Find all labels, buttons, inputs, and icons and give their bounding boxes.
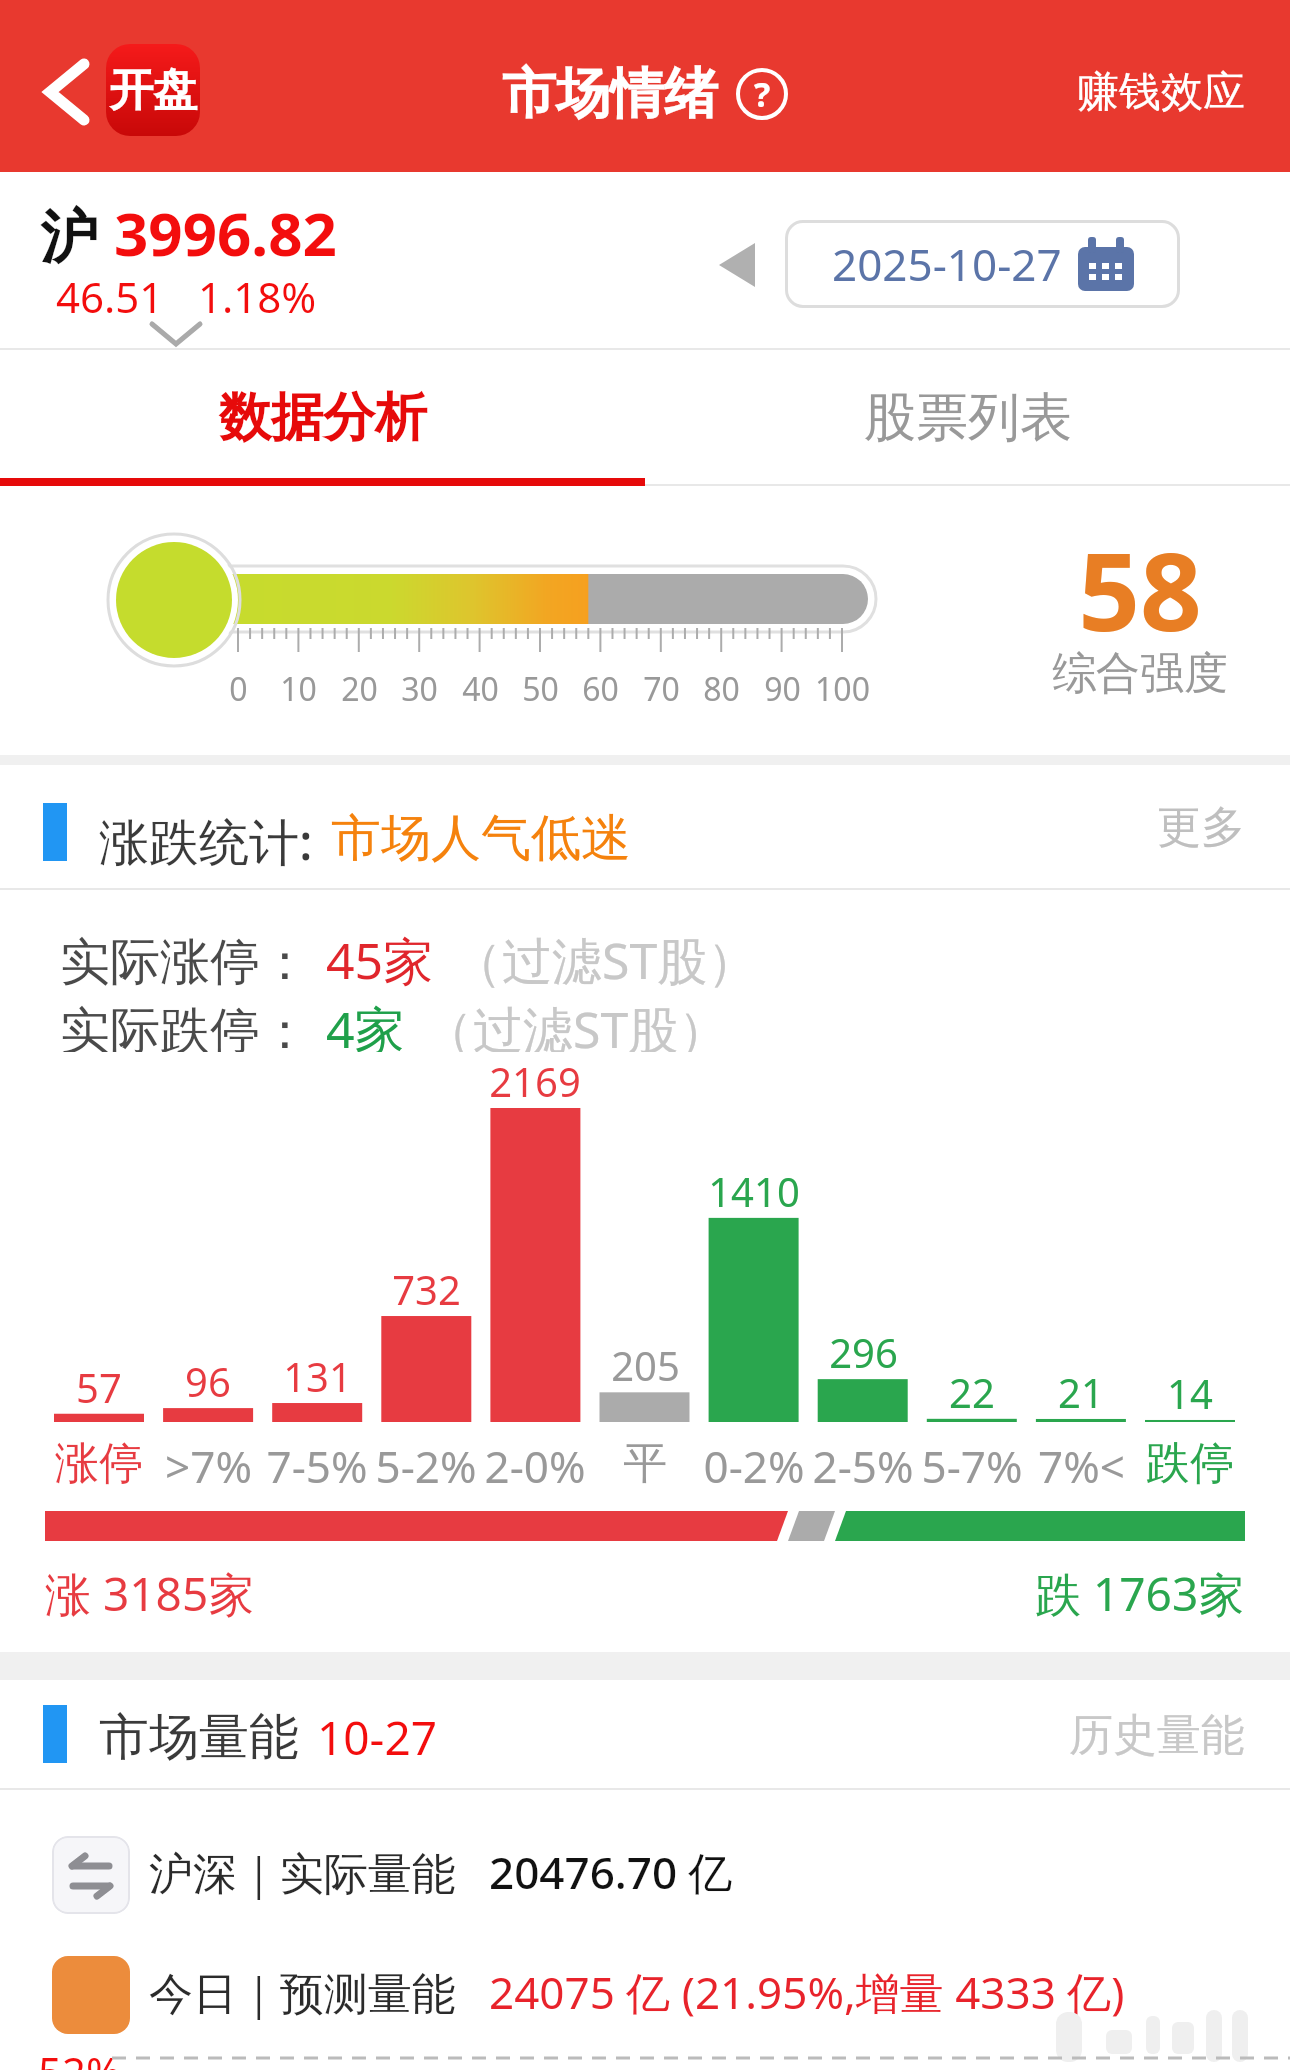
staticText: （过滤ST股） bbox=[452, 926, 758, 994]
staticText: 80 bbox=[703, 667, 740, 711]
button[interactable]: ? bbox=[736, 68, 788, 120]
staticText: 开盘 bbox=[109, 63, 197, 118]
staticText: 沪 bbox=[40, 201, 98, 274]
staticText: 沪深｜实际量能 bbox=[149, 1847, 457, 1902]
button[interactable]: 开盘 bbox=[106, 44, 200, 136]
staticText: 市场情绪 bbox=[502, 60, 718, 128]
staticText: 0 bbox=[229, 667, 248, 711]
staticText: 131 bbox=[283, 1349, 352, 1403]
staticText: 跌停 bbox=[1146, 1436, 1234, 1491]
staticText: 70 bbox=[643, 667, 680, 711]
staticText: 58 bbox=[1078, 516, 1202, 663]
staticText: 7-5% bbox=[266, 1436, 368, 1496]
staticText: 50 bbox=[522, 667, 559, 711]
staticText: 1410 bbox=[708, 1164, 800, 1218]
staticText: 2025-10-27 bbox=[832, 234, 1062, 294]
staticText: 60 bbox=[582, 667, 619, 711]
staticText: 10-27 bbox=[317, 1706, 438, 1769]
button[interactable]: 股票列表 bbox=[645, 350, 1290, 486]
staticText: 40 bbox=[462, 667, 499, 711]
staticText: 10 bbox=[280, 667, 317, 711]
staticText: 实际跌停： bbox=[60, 1000, 310, 1063]
staticText: 21 bbox=[1058, 1365, 1104, 1419]
staticText: 1.18% bbox=[198, 268, 317, 325]
staticText: 市场量能 bbox=[99, 1706, 299, 1769]
button[interactable]: 历史量能 bbox=[1069, 1708, 1245, 1763]
staticText: 历史量能 bbox=[1069, 1708, 1245, 1763]
staticText: 涨跌统计: bbox=[99, 807, 313, 875]
staticText: 股票列表 bbox=[864, 385, 1072, 451]
staticText: 100 bbox=[815, 667, 870, 711]
staticText: 14 bbox=[1167, 1366, 1213, 1420]
staticText: 96 bbox=[185, 1354, 231, 1408]
button[interactable]: 2025-10-27 bbox=[785, 220, 1180, 308]
staticText: 4家 bbox=[326, 995, 405, 1063]
staticText: 平 bbox=[623, 1436, 667, 1491]
staticText: 综合强度 bbox=[1052, 646, 1228, 701]
staticText: 52% bbox=[38, 2043, 121, 2070]
staticText: 2-0% bbox=[484, 1436, 586, 1496]
staticText: 赚钱效应 bbox=[1077, 66, 1245, 119]
staticText: 数据分析 bbox=[219, 385, 427, 451]
staticText: 20 bbox=[341, 667, 378, 711]
staticText: 0-2% bbox=[703, 1436, 805, 1496]
staticText: 跌 1763家 bbox=[1035, 1562, 1245, 1625]
staticText: 5-7% bbox=[921, 1436, 1023, 1496]
staticText: 今日｜预测量能 bbox=[149, 1967, 457, 2022]
staticText: 5-2% bbox=[375, 1436, 477, 1496]
staticText: 更多 bbox=[1157, 800, 1245, 855]
staticText: 90 bbox=[764, 667, 801, 711]
button[interactable]: 更多 bbox=[1157, 800, 1245, 855]
staticText: 3996.82 bbox=[114, 192, 337, 274]
staticText: 市场人气低迷 bbox=[331, 807, 631, 870]
button[interactable] bbox=[40, 52, 96, 132]
staticText: 2169 bbox=[489, 1054, 581, 1108]
staticText: （过滤ST股） bbox=[423, 995, 729, 1063]
staticText: 7%< bbox=[1038, 1436, 1125, 1496]
staticText: 45家 bbox=[326, 926, 434, 994]
button[interactable]: 赚钱效应 bbox=[1077, 66, 1245, 119]
staticText: 22 bbox=[949, 1365, 995, 1419]
staticText: 205 bbox=[611, 1338, 680, 1392]
staticText: 732 bbox=[392, 1262, 461, 1316]
staticText: 30 bbox=[401, 667, 438, 711]
staticText: 20476.70 亿 bbox=[489, 1842, 733, 1902]
staticText: >7% bbox=[165, 1436, 252, 1496]
staticText: 2-5% bbox=[812, 1436, 914, 1496]
staticText: 57 bbox=[76, 1360, 122, 1414]
staticText: ? bbox=[754, 71, 771, 117]
staticText: 46.51 bbox=[56, 268, 164, 325]
staticText: 涨 3185家 bbox=[45, 1562, 255, 1625]
staticText: 涨停 bbox=[55, 1436, 143, 1491]
staticText: 实际涨停： bbox=[60, 931, 310, 994]
staticText: 24075 亿 (21.95%,增量 4333 亿) bbox=[489, 1962, 1125, 2022]
button[interactable]: 数据分析 bbox=[0, 350, 645, 486]
staticText: 296 bbox=[829, 1325, 898, 1379]
